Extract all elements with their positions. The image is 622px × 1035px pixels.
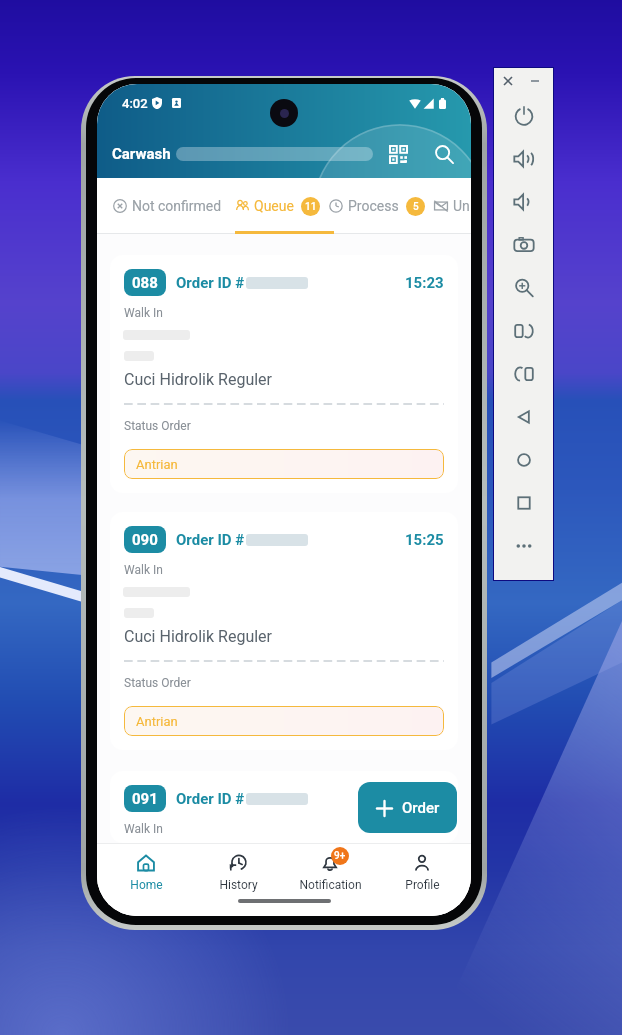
staticText: 091 [132, 790, 158, 808]
button[interactable]: Screenshot [494, 223, 553, 266]
staticText: History [219, 878, 258, 892]
button[interactable]: Process [329, 183, 425, 229]
staticText: Un [453, 198, 470, 214]
button[interactable]: Profile [376, 851, 468, 901]
button[interactable]: History [192, 851, 284, 901]
staticText: Not confirmed [132, 198, 222, 214]
staticText: Walk In [124, 822, 163, 836]
staticText: Home [130, 878, 163, 892]
staticText: Notification [299, 878, 362, 892]
staticText: 4:02 [122, 96, 148, 111]
button[interactable]: Queue [235, 183, 320, 229]
button[interactable]: Back [494, 395, 553, 438]
button[interactable]: Power [494, 94, 553, 137]
button[interactable]: Volume down [494, 180, 553, 223]
button[interactable]: Antrian [124, 706, 444, 736]
button[interactable]: Order [358, 782, 457, 833]
button[interactable]: Un [434, 183, 470, 229]
staticText: Walk In [124, 306, 163, 320]
button[interactable]: Home [100, 851, 192, 901]
button[interactable]: Antrian [124, 449, 444, 479]
staticText: Order [402, 799, 440, 817]
staticText: Status Order [124, 676, 191, 690]
staticText: 11 [305, 201, 317, 213]
staticText: Order ID # [176, 531, 245, 549]
staticText: Queue [254, 198, 294, 214]
staticText: 088 [132, 274, 158, 292]
staticText: Profile [405, 878, 440, 892]
button[interactable]: Home [494, 438, 553, 481]
staticText: 5 [413, 201, 419, 213]
staticText: 9+ [334, 850, 346, 862]
staticText: Status Order [124, 419, 191, 433]
button[interactable]: Zoom [494, 266, 553, 309]
button[interactable]: 088 [110, 255, 458, 493]
staticText: Order ID # [176, 790, 245, 808]
button[interactable]: Search [429, 139, 459, 169]
staticText: 15:28 [405, 790, 444, 808]
staticText: Cuci Hidrolik Reguler [124, 627, 272, 646]
button[interactable]: Not confirmed [113, 183, 222, 229]
staticText: Cuci Hidrolik Reguler [124, 370, 272, 389]
button[interactable]: 091 [110, 771, 458, 843]
button[interactable]: More [494, 524, 553, 567]
button[interactable]: Rotate right [494, 352, 553, 395]
button[interactable]: 9+ [284, 851, 376, 901]
staticText: Antrian [136, 714, 178, 729]
staticText: 15:25 [405, 531, 444, 549]
button[interactable]: 090 [110, 512, 458, 750]
button[interactable]: Scan QR code [383, 139, 413, 169]
staticText: 15:23 [405, 274, 444, 292]
staticText: Order ID # [176, 274, 245, 292]
button[interactable]: Close emulator panel [504, 77, 512, 85]
staticText: Walk In [124, 563, 163, 577]
staticText: Carwash [112, 145, 171, 163]
staticText: Antrian [136, 457, 178, 472]
staticText: 090 [132, 531, 158, 549]
button[interactable]: Recents [494, 481, 553, 524]
staticText: Process [348, 198, 399, 214]
button[interactable]: Rotate left [494, 309, 553, 352]
button[interactable]: Volume up [494, 137, 553, 180]
